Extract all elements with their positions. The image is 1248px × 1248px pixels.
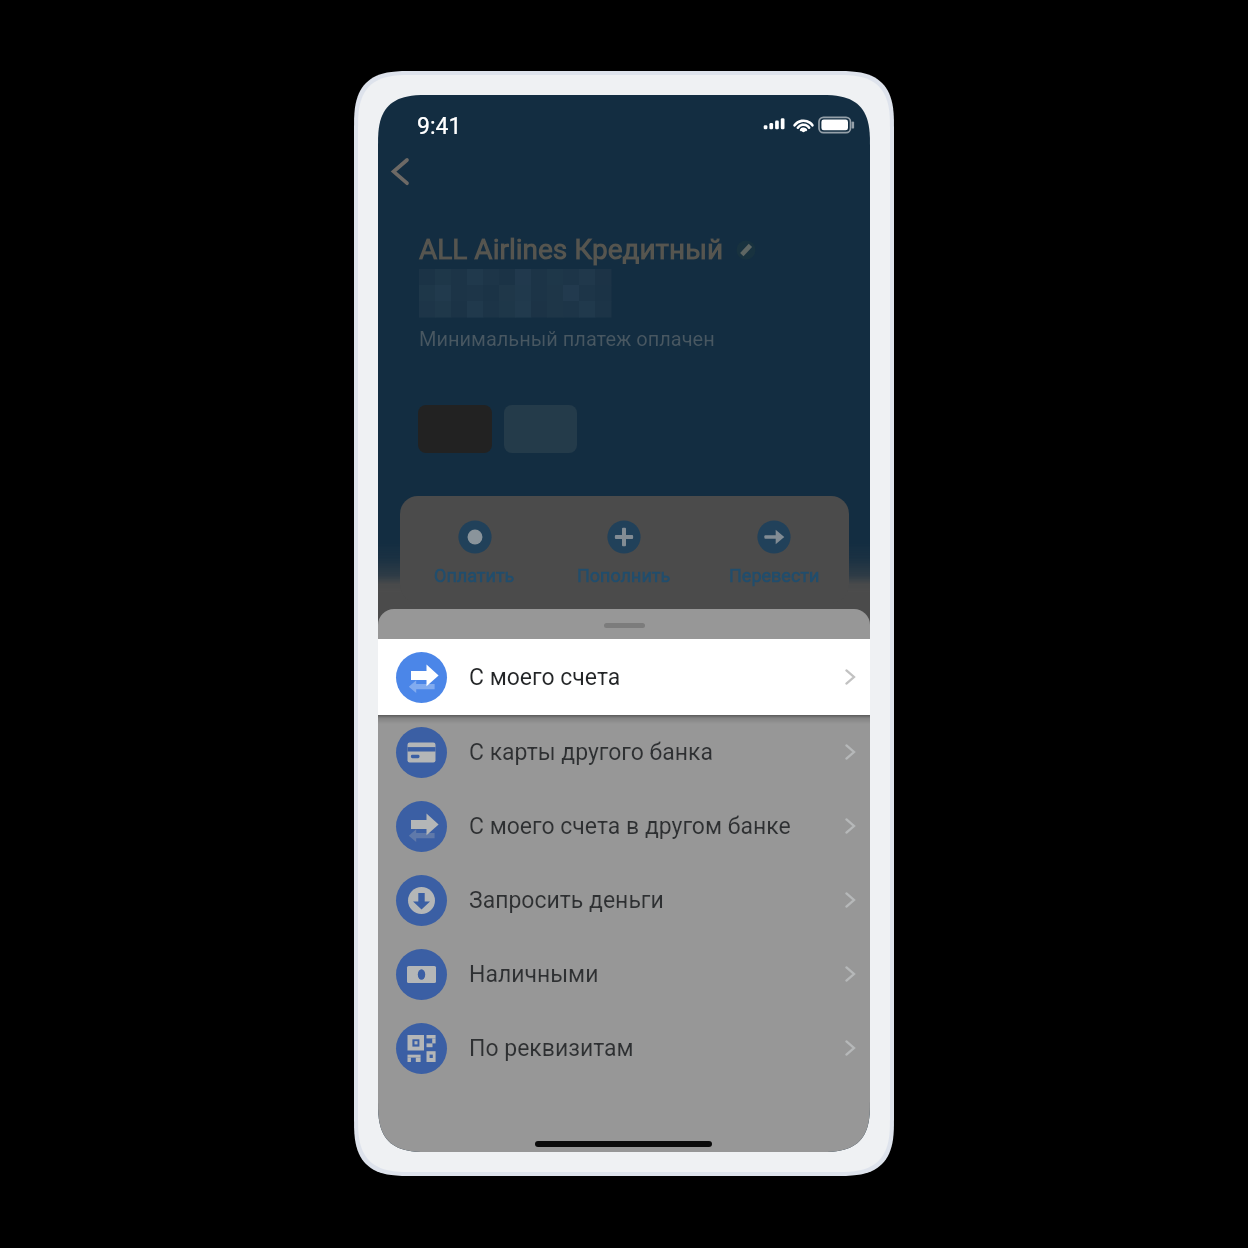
staticText: ALL Airlines Кредитный bbox=[419, 233, 724, 266]
staticText: С моего счета bbox=[469, 664, 621, 691]
staticText: Оплатить bbox=[434, 565, 515, 586]
button[interactable]: С моего счета в другом банке bbox=[378, 789, 870, 863]
staticText: Перевести bbox=[729, 565, 820, 586]
button[interactable]: Запросить деньги bbox=[378, 863, 870, 937]
staticText: С моего счета в другом банке bbox=[469, 813, 791, 840]
staticText: Минимальный платеж оплачен bbox=[419, 327, 715, 350]
staticText: Наличными bbox=[469, 961, 599, 988]
button[interactable]: Back bbox=[382, 150, 418, 194]
button[interactable]: Оплатить bbox=[400, 496, 549, 603]
staticText: Запросить деньги bbox=[469, 887, 664, 914]
button[interactable]: Наличными bbox=[378, 937, 870, 1011]
button[interactable]: По реквизитам bbox=[378, 1011, 870, 1085]
staticText: С карты другого банка bbox=[469, 739, 714, 766]
button[interactable]: Пополнить bbox=[549, 496, 699, 603]
button[interactable]: Перевести bbox=[699, 496, 849, 603]
staticText: 9:41 bbox=[417, 113, 462, 140]
staticText: Пополнить bbox=[577, 565, 671, 586]
staticText: По реквизитам bbox=[469, 1035, 634, 1062]
button[interactable]: С карты другого банка bbox=[378, 715, 870, 789]
button[interactable]: С моего счета bbox=[378, 639, 870, 715]
